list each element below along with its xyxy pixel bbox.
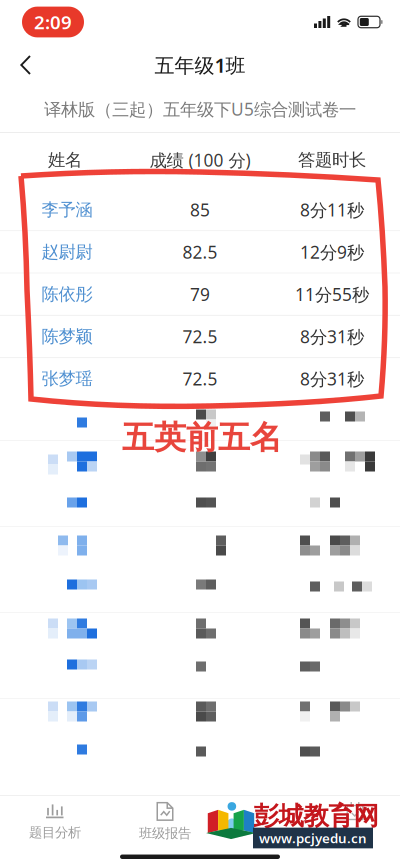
staticText: 张梦瑶 <box>41 368 92 389</box>
staticText: 班级报告 <box>139 825 191 842</box>
button[interactable]: 作业 <box>310 798 400 846</box>
button[interactable]: 题目分析 <box>0 798 110 846</box>
staticText: 82.5 <box>182 240 217 263</box>
staticText: 答题时长 <box>298 149 366 171</box>
staticText: 成绩 (100 分) <box>149 148 250 171</box>
staticText: www.pcjyedu.cn <box>259 829 367 847</box>
staticText: 译林版（三起）五年级下U5综合测试卷一 <box>44 97 356 120</box>
staticText: 2:09 <box>34 10 72 34</box>
button[interactable]: Back <box>4 45 48 85</box>
staticText: 72.5 <box>182 367 217 390</box>
staticText: 12分9秒 <box>300 240 364 263</box>
staticText: 72.5 <box>182 325 217 348</box>
staticText: 8分11秒 <box>300 198 364 221</box>
staticText: 8分31秒 <box>300 325 364 348</box>
staticText <box>342 824 368 842</box>
staticText: 79 <box>190 283 210 306</box>
staticText: 11分55秒 <box>295 283 369 306</box>
staticText: 五英前五名 <box>122 418 282 457</box>
staticText: 姓名 <box>48 149 82 171</box>
staticText: 陈梦颖 <box>41 326 92 347</box>
staticText: 8分31秒 <box>300 367 364 390</box>
staticText: 五年级1班 <box>154 52 245 78</box>
staticText: 题目分析 <box>29 824 81 841</box>
staticText: 彭城教育网 <box>253 800 378 831</box>
staticText: 陈依彤 <box>41 284 92 305</box>
staticText: 赵尉尉 <box>41 241 92 263</box>
staticText: 李予涵 <box>41 199 92 220</box>
button[interactable]: 班级报告 <box>110 798 220 846</box>
staticText: 85 <box>190 198 210 221</box>
